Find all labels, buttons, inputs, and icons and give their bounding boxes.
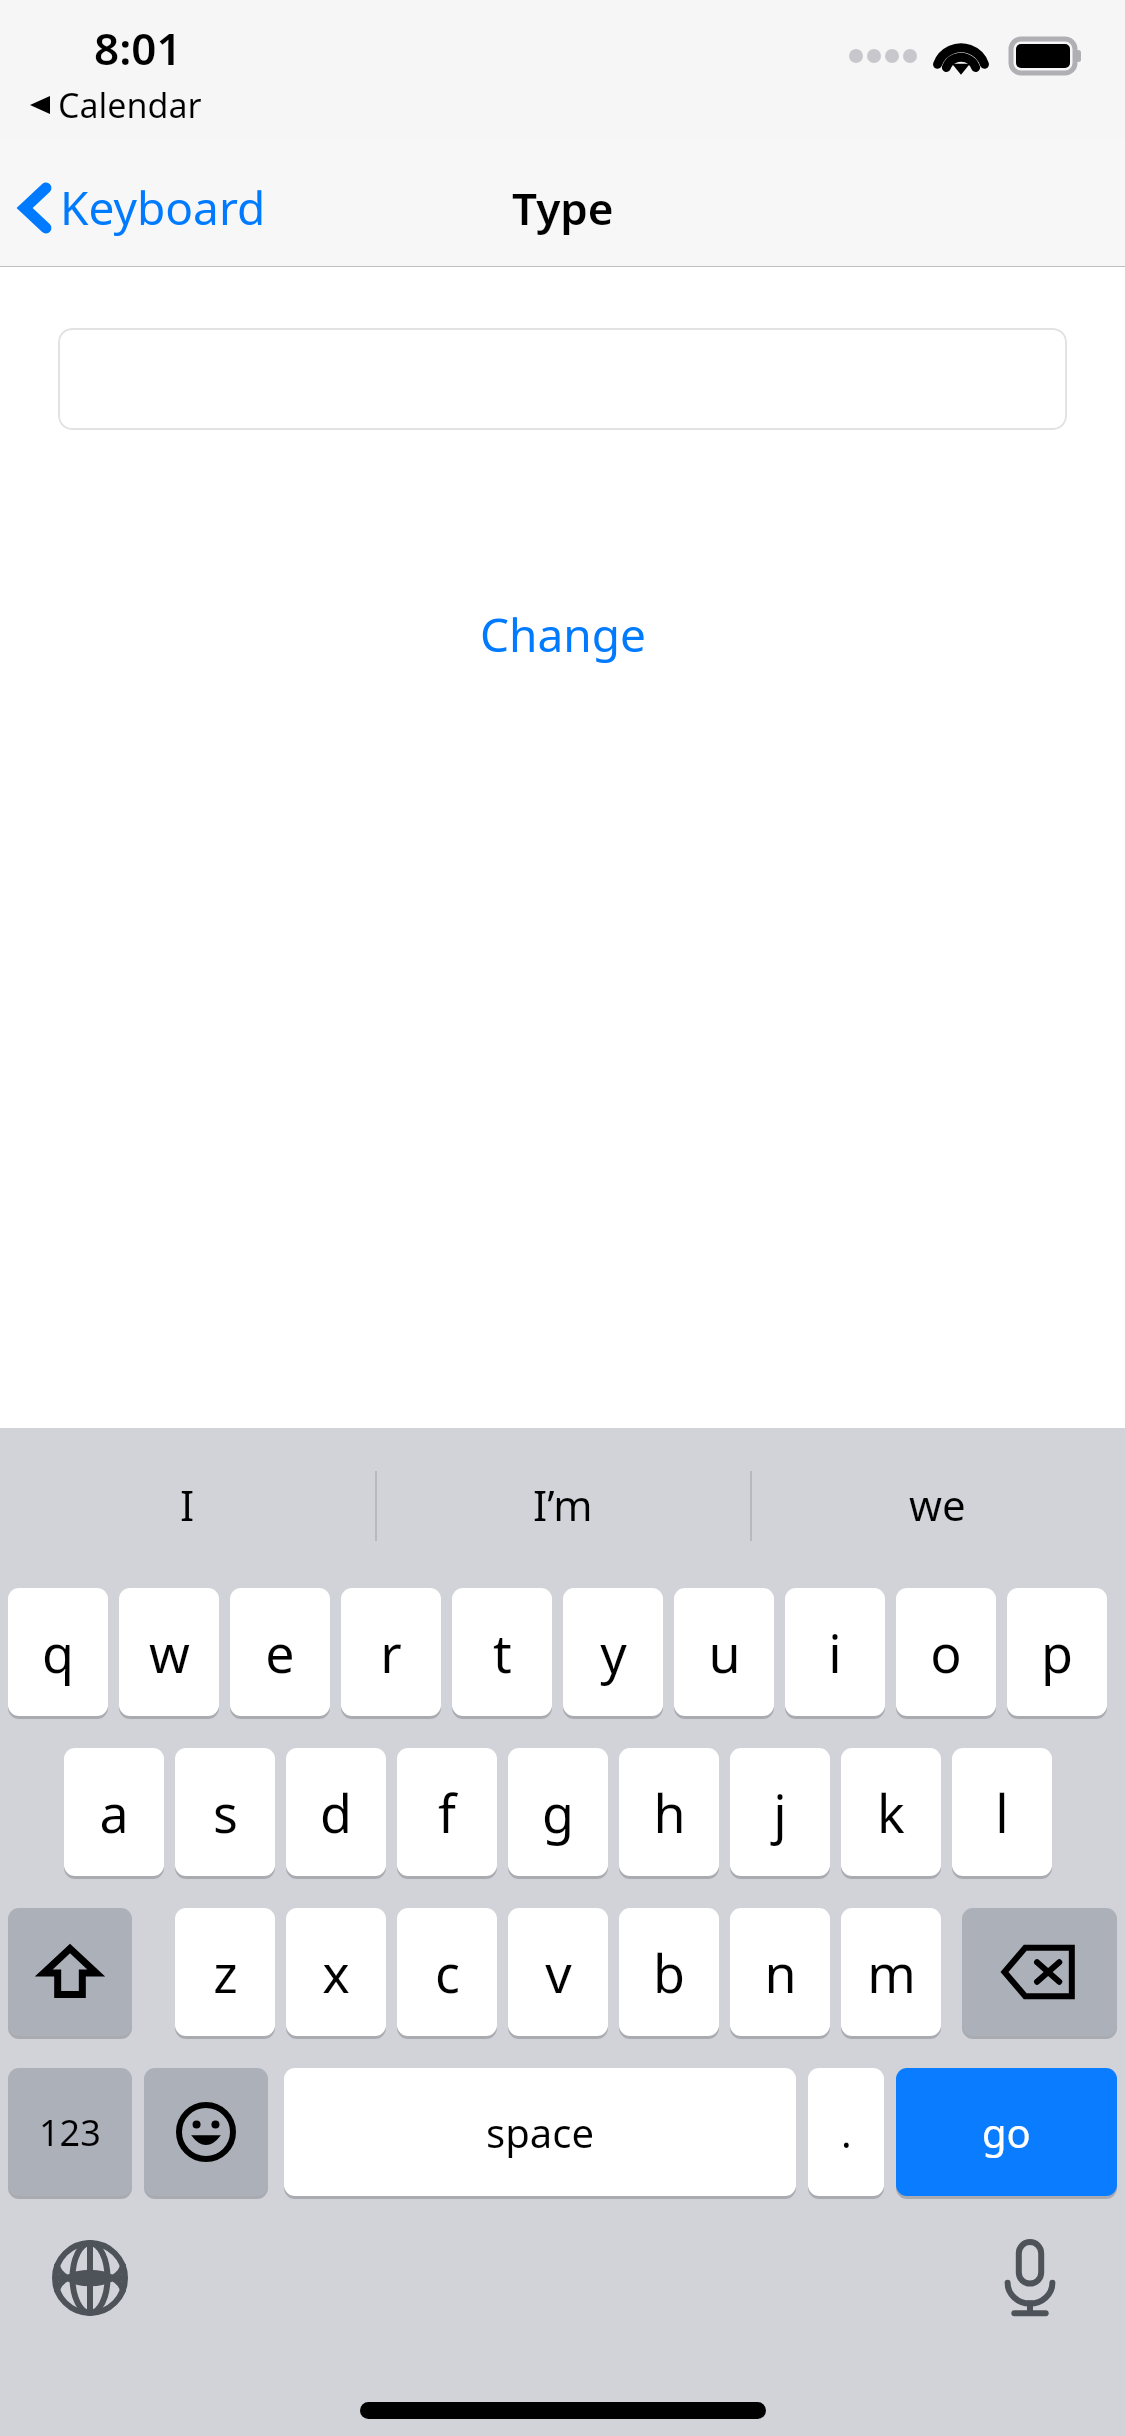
staticText: g	[542, 1777, 574, 1848]
staticText: n	[764, 1937, 797, 2008]
button[interactable]: l	[952, 1748, 1052, 1876]
button[interactable]: Calendar	[30, 82, 202, 128]
staticText: 8:01	[94, 18, 182, 78]
button[interactable]: c	[397, 1908, 497, 2036]
staticText: l	[995, 1777, 1009, 1848]
button[interactable]: q	[8, 1588, 108, 1716]
button[interactable]: z	[175, 1908, 275, 2036]
button[interactable]: we	[750, 1428, 1125, 1580]
staticText: Keyboard	[60, 176, 266, 239]
staticText: s	[213, 1777, 238, 1848]
button[interactable]: p	[1007, 1588, 1107, 1716]
button[interactable]: b	[619, 1908, 719, 2036]
button[interactable]: .	[808, 2068, 884, 2196]
staticText: h	[653, 1777, 686, 1848]
staticText: i	[828, 1617, 842, 1688]
staticText: e	[265, 1617, 295, 1688]
staticText: u	[708, 1617, 741, 1688]
button[interactable]: d	[286, 1748, 386, 1876]
staticText: d	[320, 1777, 352, 1848]
staticText: a	[99, 1777, 129, 1848]
staticText: p	[1041, 1617, 1073, 1688]
button[interactable]: y	[563, 1588, 663, 1716]
button[interactable]: g	[508, 1748, 608, 1876]
staticText: Type	[512, 178, 614, 238]
button[interactable]: Emoji	[144, 2068, 268, 2196]
staticText: m	[867, 1937, 916, 2008]
staticText: space	[486, 2105, 594, 2159]
staticText: c	[435, 1937, 460, 2008]
button[interactable]: go	[896, 2068, 1117, 2196]
button[interactable]: a	[64, 1748, 164, 1876]
button[interactable]: r	[341, 1588, 441, 1716]
button[interactable]: space	[284, 2068, 796, 2196]
staticText: k	[877, 1777, 905, 1848]
button[interactable]: n	[730, 1908, 830, 2036]
button[interactable]: x	[286, 1908, 386, 2036]
staticText: Change	[480, 603, 646, 666]
staticText: t	[493, 1617, 512, 1688]
staticText: we	[909, 1476, 966, 1533]
button[interactable]: Change	[456, 591, 670, 678]
button[interactable]: i	[785, 1588, 885, 1716]
button[interactable]: t	[452, 1588, 552, 1716]
staticText: y	[600, 1617, 627, 1688]
button[interactable]: j	[730, 1748, 830, 1876]
staticText: w	[149, 1617, 190, 1688]
staticText: I’m	[533, 1476, 593, 1533]
staticText: z	[213, 1937, 238, 2008]
button[interactable]: s	[175, 1748, 275, 1876]
button[interactable]: v	[508, 1908, 608, 2036]
staticText: Calendar	[58, 82, 202, 128]
staticText: v	[545, 1937, 572, 2008]
staticText: .	[841, 2105, 852, 2159]
button[interactable]: h	[619, 1748, 719, 1876]
staticText: r	[380, 1617, 402, 1688]
button[interactable]: Keyboard	[0, 166, 282, 249]
staticText: f	[438, 1777, 456, 1848]
button[interactable]: k	[841, 1748, 941, 1876]
staticText: x	[322, 1937, 350, 2008]
button[interactable]: I’m	[375, 1428, 750, 1580]
button[interactable]: Backspace	[962, 1908, 1117, 2036]
button[interactable]: Change keyboard language	[40, 2228, 140, 2328]
staticText: I	[180, 1476, 195, 1533]
button[interactable]: Shift	[8, 1908, 132, 2036]
button[interactable]: I	[0, 1428, 375, 1580]
button[interactable]: w	[119, 1588, 219, 1716]
button[interactable]: f	[397, 1748, 497, 1876]
staticText: go	[982, 2105, 1031, 2159]
staticText: o	[930, 1617, 962, 1688]
staticText: j	[773, 1777, 787, 1848]
button[interactable]: m	[841, 1908, 941, 2036]
button[interactable]: Dictation	[980, 2228, 1080, 2328]
button[interactable]: 123	[8, 2068, 132, 2196]
staticText: b	[653, 1937, 685, 2008]
button[interactable]: o	[896, 1588, 996, 1716]
button[interactable]: e	[230, 1588, 330, 1716]
staticText: q	[42, 1617, 74, 1688]
staticText: 123	[39, 2108, 101, 2157]
button[interactable]: u	[674, 1588, 774, 1716]
button[interactable]	[58, 328, 1067, 430]
